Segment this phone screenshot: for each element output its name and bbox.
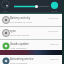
staticText: Activating service [10, 57, 34, 61]
staticText: Tap to open [10, 49, 24, 52]
staticText: 11:34 AM [48, 17, 59, 20]
staticText: MUTE [51, 10, 58, 13]
button[interactable]: Playback controls [0, 0, 64, 14]
staticText: 8:20 AM [50, 58, 59, 61]
button[interactable]: Goods update [0, 40, 64, 50]
staticText: 9:04 AM [50, 43, 59, 46]
button[interactable]: sync [0, 27, 64, 39]
staticText: Battery activity [10, 16, 31, 20]
staticText: Goods update [10, 42, 29, 46]
staticText: sync [10, 29, 16, 33]
staticText: 10:12 AM [48, 30, 59, 33]
staticText: optimised Today [10, 33, 30, 36]
button[interactable]: Battery activity [0, 14, 64, 26]
staticText: On charge at 12:04 [10, 20, 33, 23]
staticText: Scan complete [10, 61, 28, 64]
staticText: Now available [10, 46, 27, 49]
staticText: VOL [3, 9, 8, 12]
button[interactable]: Activating service [0, 55, 64, 64]
